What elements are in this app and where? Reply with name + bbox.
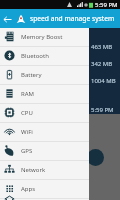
staticText: GPS xyxy=(21,147,33,155)
staticText: Network xyxy=(21,166,46,174)
staticText: Battery xyxy=(21,71,42,79)
staticText: 342 MB xyxy=(91,60,113,68)
button[interactable]: Battery xyxy=(0,65,89,84)
staticText: 5:59 PM xyxy=(95,1,118,9)
button[interactable]: Memory Boost xyxy=(0,27,89,46)
button[interactable]: Apps xyxy=(0,179,89,198)
button[interactable]: WiFi xyxy=(0,122,89,141)
button[interactable]: CPU xyxy=(0,103,89,122)
button[interactable]: Network xyxy=(0,160,89,179)
staticText: RAM xyxy=(21,90,35,98)
staticText: Bluetooth xyxy=(21,52,49,60)
button[interactable]: GPS xyxy=(0,141,89,160)
button[interactable]: RAM xyxy=(0,84,89,103)
staticText: 5:59 PM xyxy=(91,106,114,114)
button[interactable]: Boost xyxy=(87,149,104,166)
staticText: 463 MB xyxy=(91,43,113,51)
button[interactable]: Back xyxy=(0,12,14,26)
staticText: WiFi xyxy=(21,128,33,136)
button[interactable] xyxy=(0,198,89,200)
button[interactable]: Bluetooth xyxy=(0,46,89,65)
staticText: Memory Boost xyxy=(21,33,63,41)
staticText: 1004 MB xyxy=(91,77,116,85)
staticText: speed and manage system xyxy=(30,14,115,23)
staticText: CPU xyxy=(21,109,33,117)
staticText: Apps xyxy=(21,185,36,193)
